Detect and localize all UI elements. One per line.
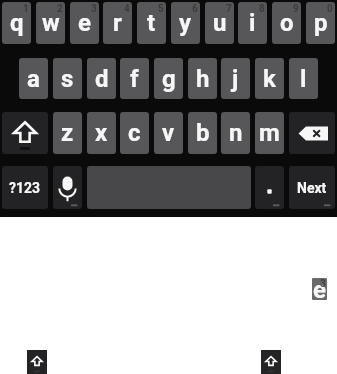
- button[interactable]: r: [103, 2, 132, 44]
- staticText: c: [128, 119, 141, 147]
- staticText: z: [61, 119, 74, 147]
- staticText: m: [259, 119, 280, 147]
- staticText: 9: [293, 3, 299, 15]
- button[interactable]: d: [87, 58, 116, 99]
- staticText: q: [10, 9, 24, 37]
- staticText: l: [300, 65, 307, 93]
- button[interactable]: e: [70, 2, 99, 44]
- button[interactable]: e: [312, 278, 327, 300]
- button[interactable]: c: [120, 112, 149, 154]
- staticText: u: [213, 9, 227, 37]
- staticText: n: [229, 119, 243, 147]
- button[interactable]: a: [19, 58, 48, 99]
- button[interactable]: Next: [289, 166, 335, 209]
- button[interactable]: q: [2, 2, 31, 44]
- button[interactable]: t: [137, 2, 166, 44]
- button[interactable]: [2, 112, 48, 154]
- button[interactable]: y: [171, 2, 200, 44]
- staticText: 8: [259, 3, 265, 15]
- staticText: b: [196, 119, 210, 147]
- staticText: h: [196, 65, 210, 93]
- button[interactable]: v: [154, 112, 183, 154]
- staticText: 6: [192, 3, 198, 15]
- staticText: k: [263, 65, 276, 93]
- staticText: g: [162, 65, 176, 93]
- button[interactable]: x: [87, 112, 116, 154]
- button[interactable]: [255, 166, 284, 209]
- staticText: f: [130, 65, 139, 93]
- button[interactable]: k: [255, 58, 284, 99]
- button[interactable]: n: [221, 112, 250, 154]
- button[interactable]: p: [306, 2, 335, 44]
- button[interactable]: [27, 350, 47, 374]
- button[interactable]: m: [255, 112, 284, 154]
- button[interactable]: j: [221, 58, 250, 99]
- staticText: ?123: [9, 180, 41, 196]
- button[interactable]: z: [53, 112, 82, 154]
- button[interactable]: [261, 350, 281, 374]
- staticText: r: [113, 9, 122, 37]
- staticText: a: [27, 65, 40, 93]
- button[interactable]: u: [205, 2, 234, 44]
- button[interactable]: ?123: [2, 166, 48, 209]
- staticText: 3: [320, 278, 326, 290]
- button[interactable]: [289, 112, 335, 154]
- staticText: 5: [158, 3, 164, 15]
- button[interactable]: h: [188, 58, 217, 99]
- button[interactable]: [53, 166, 82, 209]
- staticText: p: [314, 9, 328, 37]
- staticText: x: [95, 119, 108, 147]
- staticText: e: [78, 9, 91, 37]
- staticText: t: [147, 9, 156, 37]
- staticText: d: [95, 65, 109, 93]
- button[interactable]: f: [120, 58, 149, 99]
- button[interactable]: i: [238, 2, 267, 44]
- button[interactable]: b: [188, 112, 217, 154]
- staticText: i: [249, 9, 256, 37]
- staticText: j: [232, 65, 239, 93]
- staticText: 0: [327, 3, 333, 15]
- button[interactable]: g: [154, 58, 183, 99]
- staticText: Next: [297, 180, 327, 196]
- staticText: 2: [57, 3, 63, 15]
- staticText: v: [162, 119, 175, 147]
- button[interactable]: o: [272, 2, 301, 44]
- staticText: y: [179, 9, 192, 37]
- button[interactable]: l: [289, 58, 318, 99]
- staticText: w: [42, 9, 60, 37]
- staticText: 4: [124, 3, 130, 15]
- staticText: 1: [23, 3, 29, 15]
- staticText: e: [313, 278, 326, 298]
- staticText: 3: [91, 3, 97, 15]
- button[interactable]: s: [53, 58, 82, 99]
- staticText: s: [61, 65, 74, 93]
- staticText: o: [280, 9, 294, 37]
- staticText: 7: [226, 3, 232, 15]
- button[interactable]: w: [36, 2, 65, 44]
